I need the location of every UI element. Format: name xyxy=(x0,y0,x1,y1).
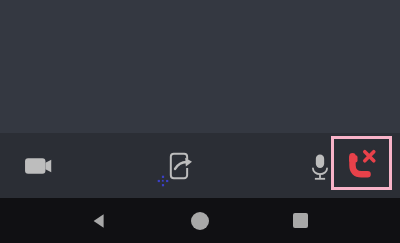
button[interactable]: Home xyxy=(178,198,222,243)
button[interactable]: Back xyxy=(78,198,122,243)
button[interactable]: End call xyxy=(331,136,392,190)
button[interactable]: Mute microphone xyxy=(290,133,350,198)
button[interactable]: Share screen xyxy=(150,133,210,198)
button[interactable]: Video xyxy=(10,133,70,198)
button[interactable]: Recent apps xyxy=(278,198,322,243)
